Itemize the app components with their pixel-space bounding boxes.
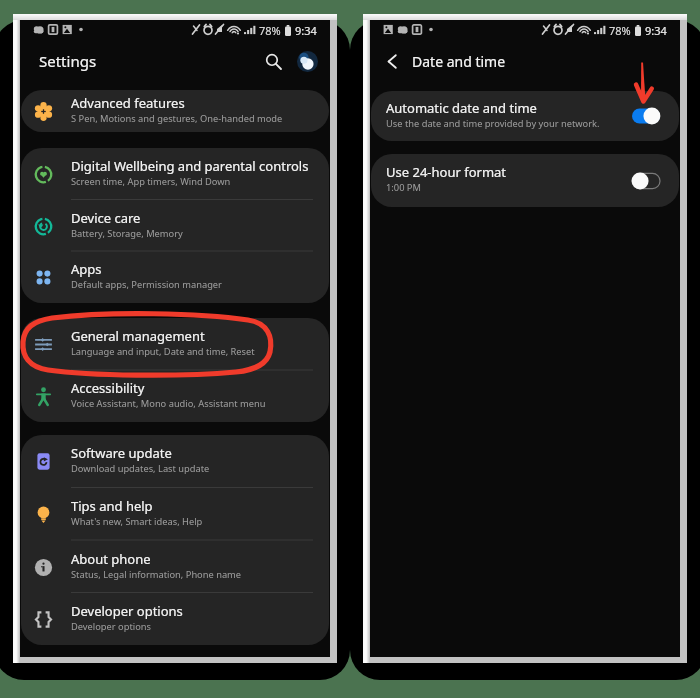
staticText: Accessibility (71, 379, 145, 397)
staticText: Date and time (412, 52, 506, 71)
button[interactable]: General management (21, 318, 329, 370)
button[interactable]: Automatic date and time (632, 107, 660, 125)
staticText: Default apps, Permission manager (71, 278, 222, 291)
staticText: Developer options (71, 620, 151, 633)
staticText: Developer options (71, 602, 183, 620)
staticText: Advanced features (71, 94, 185, 112)
button[interactable]: Digital Wellbeing and parental controls (21, 148, 329, 200)
button[interactable]: Apps (21, 252, 329, 303)
button[interactable]: Software update (21, 435, 329, 488)
staticText: About phone (71, 550, 151, 568)
button[interactable]: Advanced features (21, 90, 329, 132)
staticText: Automatic date and time (386, 99, 537, 117)
button[interactable]: Automatic date and time (371, 91, 679, 141)
staticText: What's new, Smart ideas, Help (71, 515, 203, 528)
button[interactable]: Device care (21, 200, 329, 252)
button[interactable]: Accessibility (21, 370, 329, 422)
staticText: Voice Assistant, Mono audio, Assistant m… (71, 397, 266, 410)
staticText: 1:00 PM (386, 181, 421, 194)
staticText: Tips and help (71, 497, 153, 515)
staticText: Software update (71, 444, 172, 462)
button[interactable]: Use 24-hour format (632, 172, 660, 190)
staticText: 9:34 (645, 23, 667, 38)
staticText: Settings (39, 51, 97, 71)
button[interactable]: Back (379, 48, 405, 74)
staticText: S Pen, Motions and gestures, One-handed … (71, 112, 283, 125)
staticText: Screen time, App timers, Wind Down (71, 175, 231, 188)
staticText: Language and input, Date and time, Reset (71, 345, 255, 358)
button[interactable]: Search (260, 48, 286, 74)
staticText: Device care (71, 209, 141, 227)
staticText: Digital Wellbeing and parental controls (71, 157, 309, 175)
staticText: Download updates, Last update (71, 462, 210, 475)
button[interactable]: Tips and help (21, 488, 329, 541)
staticText: Battery, Storage, Memory (71, 227, 183, 240)
staticText: 78% (609, 23, 631, 38)
staticText: 78% (259, 23, 281, 38)
button[interactable]: Profile (297, 51, 318, 72)
staticText: Use the date and time provided by your n… (386, 117, 600, 130)
button[interactable]: Use 24-hour format (371, 154, 679, 207)
button[interactable]: Developer options (21, 594, 329, 645)
staticText: Use 24-hour format (386, 163, 507, 181)
staticText: Status, Legal information, Phone name (71, 568, 242, 581)
staticText: 9:34 (295, 23, 317, 38)
button[interactable]: About phone (21, 541, 329, 594)
staticText: Apps (71, 260, 102, 278)
staticText: General management (71, 327, 205, 345)
